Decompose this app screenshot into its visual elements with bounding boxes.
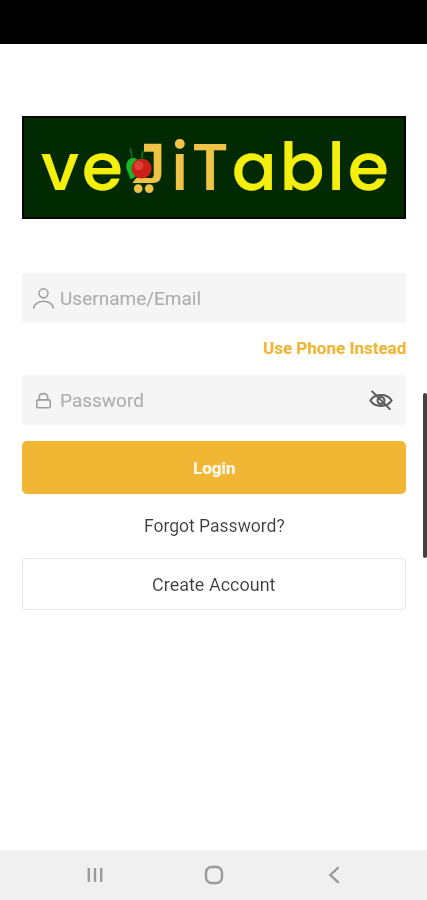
staticText: Password [60, 389, 144, 411]
button[interactable]: Create Account [22, 558, 406, 610]
button[interactable]: Back [294, 855, 374, 895]
staticText: Login [193, 458, 236, 478]
button[interactable]: Forgot Password? [22, 508, 406, 544]
staticText: Username/Email [60, 287, 202, 309]
staticText: Create Account [152, 574, 276, 595]
staticText: Forgot Password? [144, 516, 285, 537]
staticText: Use Phone Instead [263, 338, 407, 358]
button[interactable]: Show password [359, 378, 403, 422]
button[interactable]: Home [174, 855, 254, 895]
staticText: ve [41, 121, 126, 213]
staticText: able [232, 121, 392, 213]
button[interactable]: Recent apps [55, 855, 135, 895]
button[interactable]: Use Phone Instead [250, 336, 407, 360]
staticText: iT [171, 121, 232, 213]
button[interactable]: Password [22, 375, 406, 425]
button[interactable]: Username/Email [22, 273, 406, 323]
button[interactable]: Login [22, 441, 406, 494]
